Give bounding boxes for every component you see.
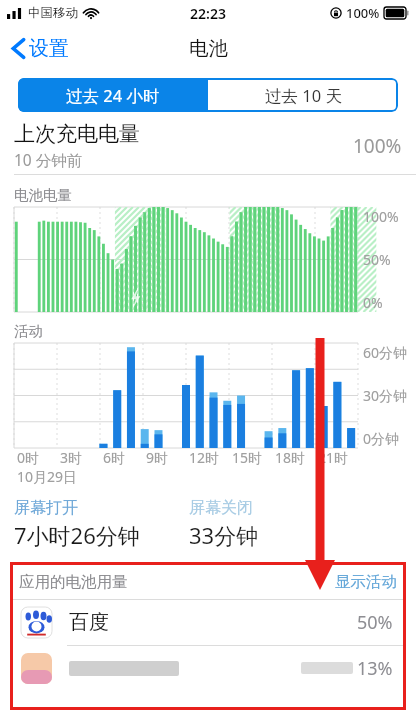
staticText: 21时 — [318, 448, 349, 467]
staticText: 电池电量 — [14, 186, 72, 204]
staticText: 0时 — [17, 448, 40, 467]
other: Back — [12, 38, 25, 59]
button[interactable]: 过去 24 小时 — [18, 78, 208, 112]
staticText: 过去 10 天 — [265, 84, 342, 107]
staticText: 0分钟 — [363, 429, 400, 448]
button[interactable]: 过去 10 天 — [208, 78, 398, 112]
staticText: 屏幕关闭 — [189, 498, 253, 518]
staticText: 中国移动 — [28, 5, 78, 21]
staticText: 屏幕打开 — [14, 498, 78, 518]
staticText: 上次充电电量 — [14, 121, 140, 147]
staticText: 10月29日 — [17, 467, 78, 486]
button[interactable]: 显示活动 — [335, 572, 397, 592]
staticText: 18时 — [275, 448, 306, 467]
button[interactable]: 13% — [13, 646, 403, 690]
staticText: 100% — [363, 207, 399, 226]
staticText: 0% — [363, 293, 383, 312]
staticText: 3时 — [60, 448, 83, 467]
staticText: 100% — [353, 133, 402, 159]
staticText: 6时 — [103, 448, 126, 467]
staticText: 50% — [363, 250, 391, 269]
staticText: 7小时26分钟 — [14, 520, 140, 550]
staticText: 100% — [346, 4, 380, 22]
button[interactable]: 上次充电电量 — [14, 121, 402, 170]
button[interactable]: 百度 — [13, 600, 403, 645]
button[interactable]: Back — [8, 30, 73, 67]
staticText: 电池 — [189, 36, 228, 61]
staticText: 过去 24 小时 — [66, 84, 160, 107]
staticText: 设置 — [29, 36, 69, 61]
staticText: 12时 — [189, 448, 220, 467]
staticText: 22:23 — [190, 4, 226, 23]
staticText: 15时 — [232, 448, 263, 467]
staticText: 显示活动 — [335, 572, 397, 592]
staticText: 10 分钟前 — [14, 149, 83, 170]
staticText: 50% — [357, 610, 393, 635]
staticText: 13% — [357, 656, 393, 681]
staticText: 60分钟 — [363, 343, 408, 362]
staticText: 30分钟 — [363, 386, 408, 405]
staticText: 百度 — [69, 610, 109, 635]
staticText: 应用的电池用量 — [19, 572, 128, 592]
staticText: 活动 — [14, 322, 43, 340]
staticText: 9时 — [146, 448, 169, 467]
staticText: 33分钟 — [189, 520, 259, 550]
